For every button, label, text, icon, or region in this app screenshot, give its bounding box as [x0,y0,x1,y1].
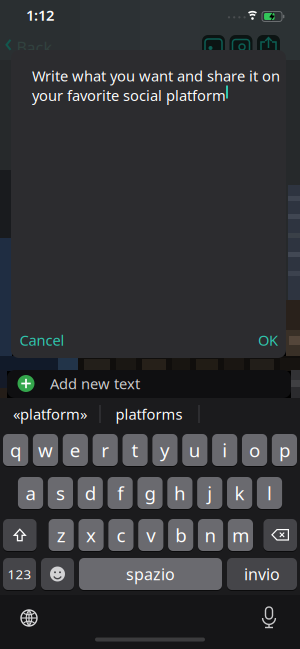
staticText: 1:12 [26,5,54,25]
button[interactable]: x [78,518,104,552]
staticText: spazio [126,563,175,585]
button[interactable]: z [49,518,74,552]
staticText: Write what you want and share it on your… [32,66,280,105]
button[interactable]: j [197,476,222,510]
button[interactable]: Emoji [41,557,74,591]
button[interactable]: Next Keyboard [16,605,42,631]
staticText: h [174,481,186,505]
staticText: q [10,438,21,462]
button[interactable]: Dictation [258,605,280,631]
button[interactable]: d [78,476,103,510]
button[interactable]: e [63,433,88,467]
staticText: p [279,438,290,462]
staticText: Cancel [19,330,64,350]
button[interactable]: f [107,476,133,510]
button[interactable]: Add new text [7,370,291,398]
button[interactable]: i [212,433,237,467]
button[interactable]: Photo Library [202,35,225,57]
button[interactable]: Camera [229,35,252,57]
staticText: platforms [115,404,182,424]
button[interactable]: s [48,476,73,510]
button[interactable]: p [272,433,297,467]
button[interactable]: platforms [101,401,197,427]
staticText: l [267,481,272,505]
staticText: t [132,438,139,462]
button[interactable]: m [228,518,253,552]
button[interactable]: Shift [3,518,37,552]
staticText: x [86,523,96,547]
button[interactable]: h [167,476,192,510]
button[interactable]: c [108,518,133,552]
button[interactable]: b [168,518,193,552]
staticText: k [235,481,245,505]
staticText: r [101,438,109,462]
button[interactable]: OK [258,330,278,350]
button[interactable]: l [257,476,282,510]
staticText: b [175,523,186,547]
staticText: 123 [7,565,31,583]
staticText: w [38,438,53,462]
button[interactable]: y [152,433,177,467]
staticText: c [116,523,125,547]
button[interactable]: r [93,433,118,467]
button[interactable]: t [122,433,148,467]
button[interactable]: g [137,476,163,510]
button[interactable]: spazio [79,557,222,591]
staticText: m [232,523,249,547]
staticText: «platform» [13,404,87,424]
staticText: d [85,481,96,505]
button[interactable]: Back [5,37,52,58]
button[interactable]: Cancel [19,330,64,350]
button[interactable]: o [242,433,267,467]
staticText: a [25,481,35,505]
staticText: v [146,523,155,547]
staticText: y [160,438,170,462]
staticText: Add new text [50,374,140,393]
button[interactable]: Share [257,35,280,57]
button[interactable]: w [33,433,58,467]
staticText: j [207,481,212,505]
button[interactable]: v [138,518,163,552]
button[interactable]: k [227,476,252,510]
staticText: invio [244,563,280,585]
staticText: OK [258,330,278,350]
button[interactable]: 123 [3,557,36,591]
staticText: u [189,438,201,462]
staticText: e [70,438,81,462]
staticText: Back [16,37,52,58]
button[interactable]: Delete [263,518,297,552]
button[interactable]: n [198,518,223,552]
staticText: n [204,523,216,547]
button[interactable]: q [3,433,28,467]
staticText: o [249,438,260,462]
staticText: z [57,523,66,547]
button[interactable]: invio [227,557,297,591]
staticText: i [222,438,227,462]
staticText: s [56,481,65,505]
button[interactable]: u [182,433,207,467]
button[interactable]: «platform» [2,401,98,427]
button[interactable]: a [18,476,43,510]
staticText: f [117,481,123,505]
staticText: g [144,481,155,505]
